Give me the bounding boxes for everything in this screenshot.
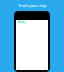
staticText: Today — [17, 20, 25, 24]
staticText: Track your day — [18, 3, 46, 8]
